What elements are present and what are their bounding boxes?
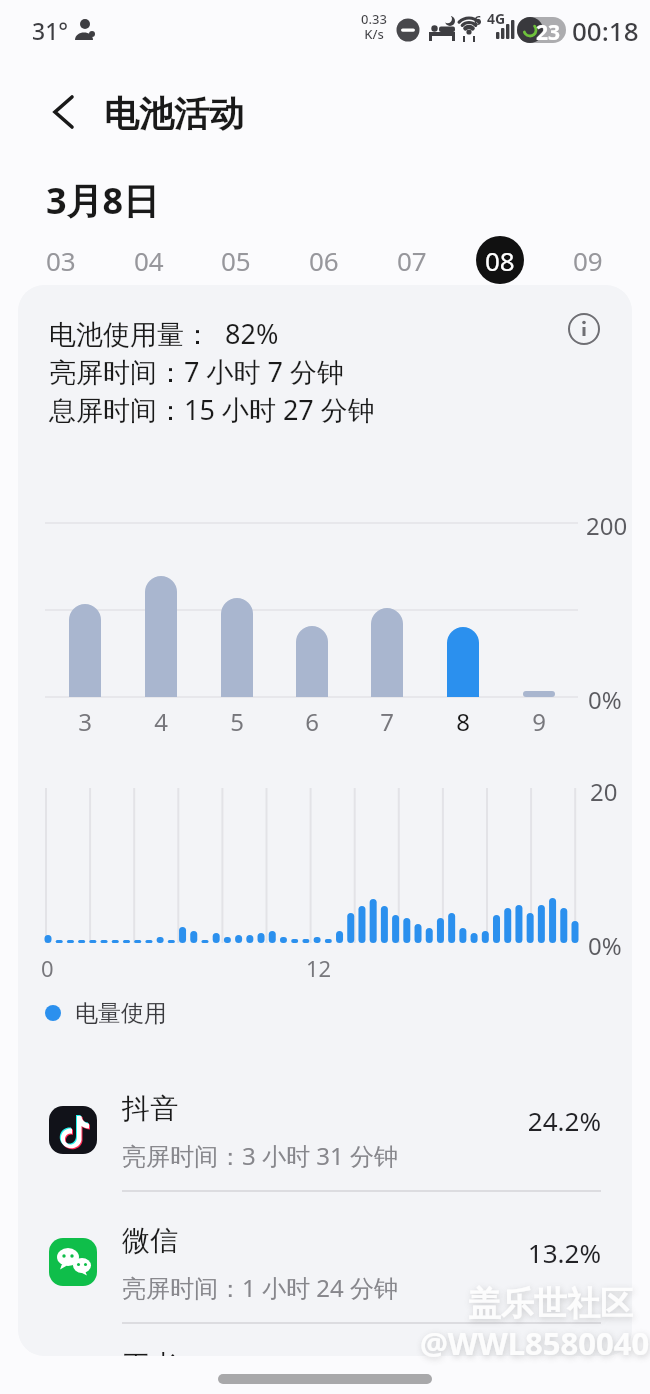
staticText: 07 (397, 243, 427, 278)
staticText: 亮屏时间：3 小时 31 分钟 (122, 1139, 398, 1172)
staticText: 04 (134, 243, 164, 278)
staticText: 200 (586, 509, 628, 542)
staticText: 20 (590, 775, 618, 808)
staticText: 亮屏时间：7 小时 7 分钟 (49, 353, 344, 390)
staticText: 0% (588, 683, 622, 716)
staticText: 王者 (122, 1345, 186, 1356)
staticText: 8 (453, 705, 473, 738)
staticText: 9 (529, 705, 549, 738)
staticText: 3 (75, 705, 95, 738)
staticText: 0% (588, 929, 622, 962)
button[interactable]: 03 (37, 236, 85, 284)
staticText: 06 (309, 243, 339, 278)
staticText: 5 (227, 705, 247, 738)
staticText: 电池活动 (104, 92, 244, 136)
button[interactable] (49, 1085, 601, 1175)
button[interactable]: 04 (125, 236, 173, 284)
button[interactable]: 08 (476, 236, 524, 284)
staticText: 08 (485, 243, 515, 278)
staticText: 抖音 (122, 1091, 178, 1126)
staticText: 0.33 K/s (356, 10, 392, 43)
staticText: 09 (573, 243, 603, 278)
staticText: 6 (302, 705, 322, 738)
button[interactable]: 05 (212, 236, 260, 284)
staticText: 电量使用 (75, 999, 167, 1028)
button[interactable]: 07 (388, 236, 436, 284)
button[interactable] (49, 1217, 601, 1307)
staticText: @WWL8580040 (420, 1322, 650, 1364)
button[interactable]: 09 (564, 236, 612, 284)
staticText: 31° (32, 15, 69, 46)
staticText: 电池使用量： 82% (49, 315, 279, 352)
staticText: 3月8日 (46, 176, 160, 225)
staticText: 亮屏时间：1 小时 24 分钟 (122, 1271, 398, 1304)
staticText: 24.2% (466, 1103, 601, 1138)
button[interactable] (562, 307, 606, 351)
staticText: 23 (536, 18, 561, 47)
staticText: 0 (41, 953, 54, 983)
staticText: 盖乐世社区 (468, 1283, 633, 1325)
staticText: 13.2% (466, 1235, 601, 1270)
staticText: 03 (46, 243, 76, 278)
staticText: 12 (306, 953, 332, 983)
staticText: 7 (377, 705, 397, 738)
staticText: 6 (474, 11, 482, 29)
staticText: 00:18 (572, 13, 639, 48)
staticText: 05 (221, 243, 251, 278)
staticText: 4G (487, 9, 506, 28)
button[interactable] (36, 86, 88, 138)
button[interactable]: 06 (300, 236, 348, 284)
staticText: 微信 (122, 1223, 178, 1258)
staticText: 4 (151, 705, 171, 738)
staticText: 息屏时间：15 小时 27 分钟 (49, 391, 375, 428)
